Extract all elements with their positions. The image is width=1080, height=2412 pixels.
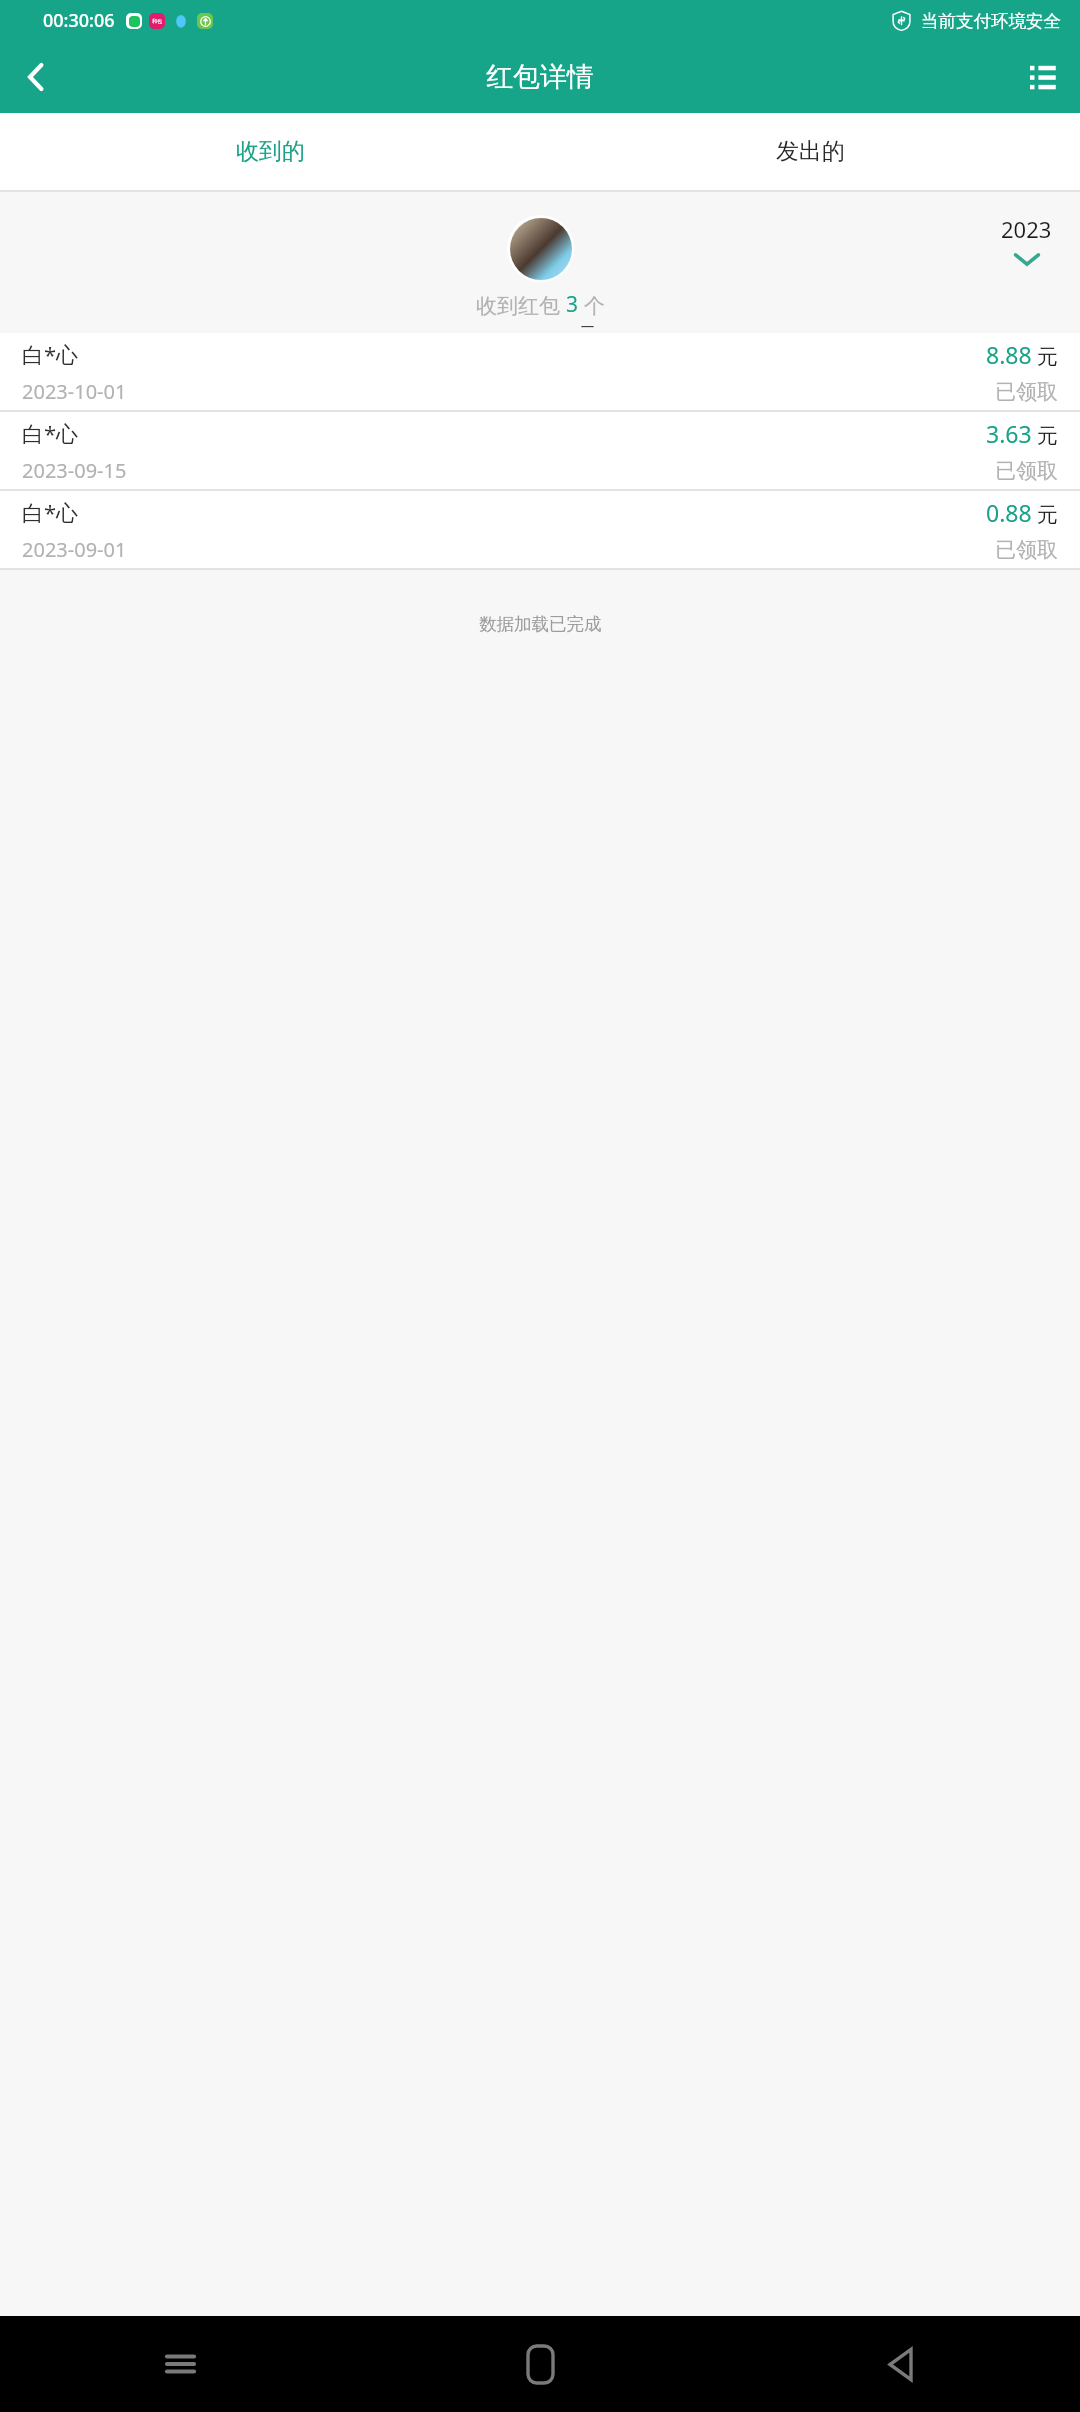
staticText: 红包详情 [486,60,594,94]
staticText: 00:30:06 [43,8,115,33]
staticText: 元 [1037,502,1058,528]
button[interactable]: 白*心 [0,491,1080,568]
staticText: 已领取 [995,458,1058,484]
staticText: 3 [566,290,579,319]
button[interactable]: Back [0,41,72,113]
staticText: 和包 [152,18,162,24]
button[interactable]: Back [720,2316,1080,2412]
staticText: 3.63 [986,418,1032,449]
staticText: 已领取 [995,537,1058,563]
staticText: 2023-10-01 [22,378,127,405]
staticText: 2023-09-15 [22,457,127,484]
staticText: 0.88 [986,497,1032,528]
button[interactable]: Menu [1008,41,1080,113]
staticText: 元 [578,323,597,330]
button[interactable]: 白*心 [0,412,1080,489]
staticText: 个 [584,293,605,319]
staticText: 元 [1037,423,1058,449]
staticText: 8.88 [986,339,1032,370]
staticText: 当前支付环境安全 [921,10,1061,32]
staticText: 白*心 [22,339,79,369]
staticText: 收到的 [236,137,305,166]
staticText: 已领取 [995,379,1058,405]
staticText: 收到红包 [476,293,560,319]
staticText: 白*心 [22,418,79,448]
staticText: 数据加载已完成 [479,613,602,635]
button[interactable]: 2023 [995,214,1058,266]
staticText: 白*心 [22,497,79,527]
button[interactable]: 收到的 [0,113,540,190]
staticText: 元 [1037,344,1058,370]
button[interactable]: Home [360,2316,720,2412]
staticText: 2023 [1001,214,1052,244]
staticText: 发出的 [776,137,845,166]
button[interactable]: Recents [0,2316,360,2412]
button[interactable]: 发出的 [540,113,1080,190]
button[interactable]: 白*心 [0,333,1080,410]
staticText: 2023-09-01 [22,536,127,563]
